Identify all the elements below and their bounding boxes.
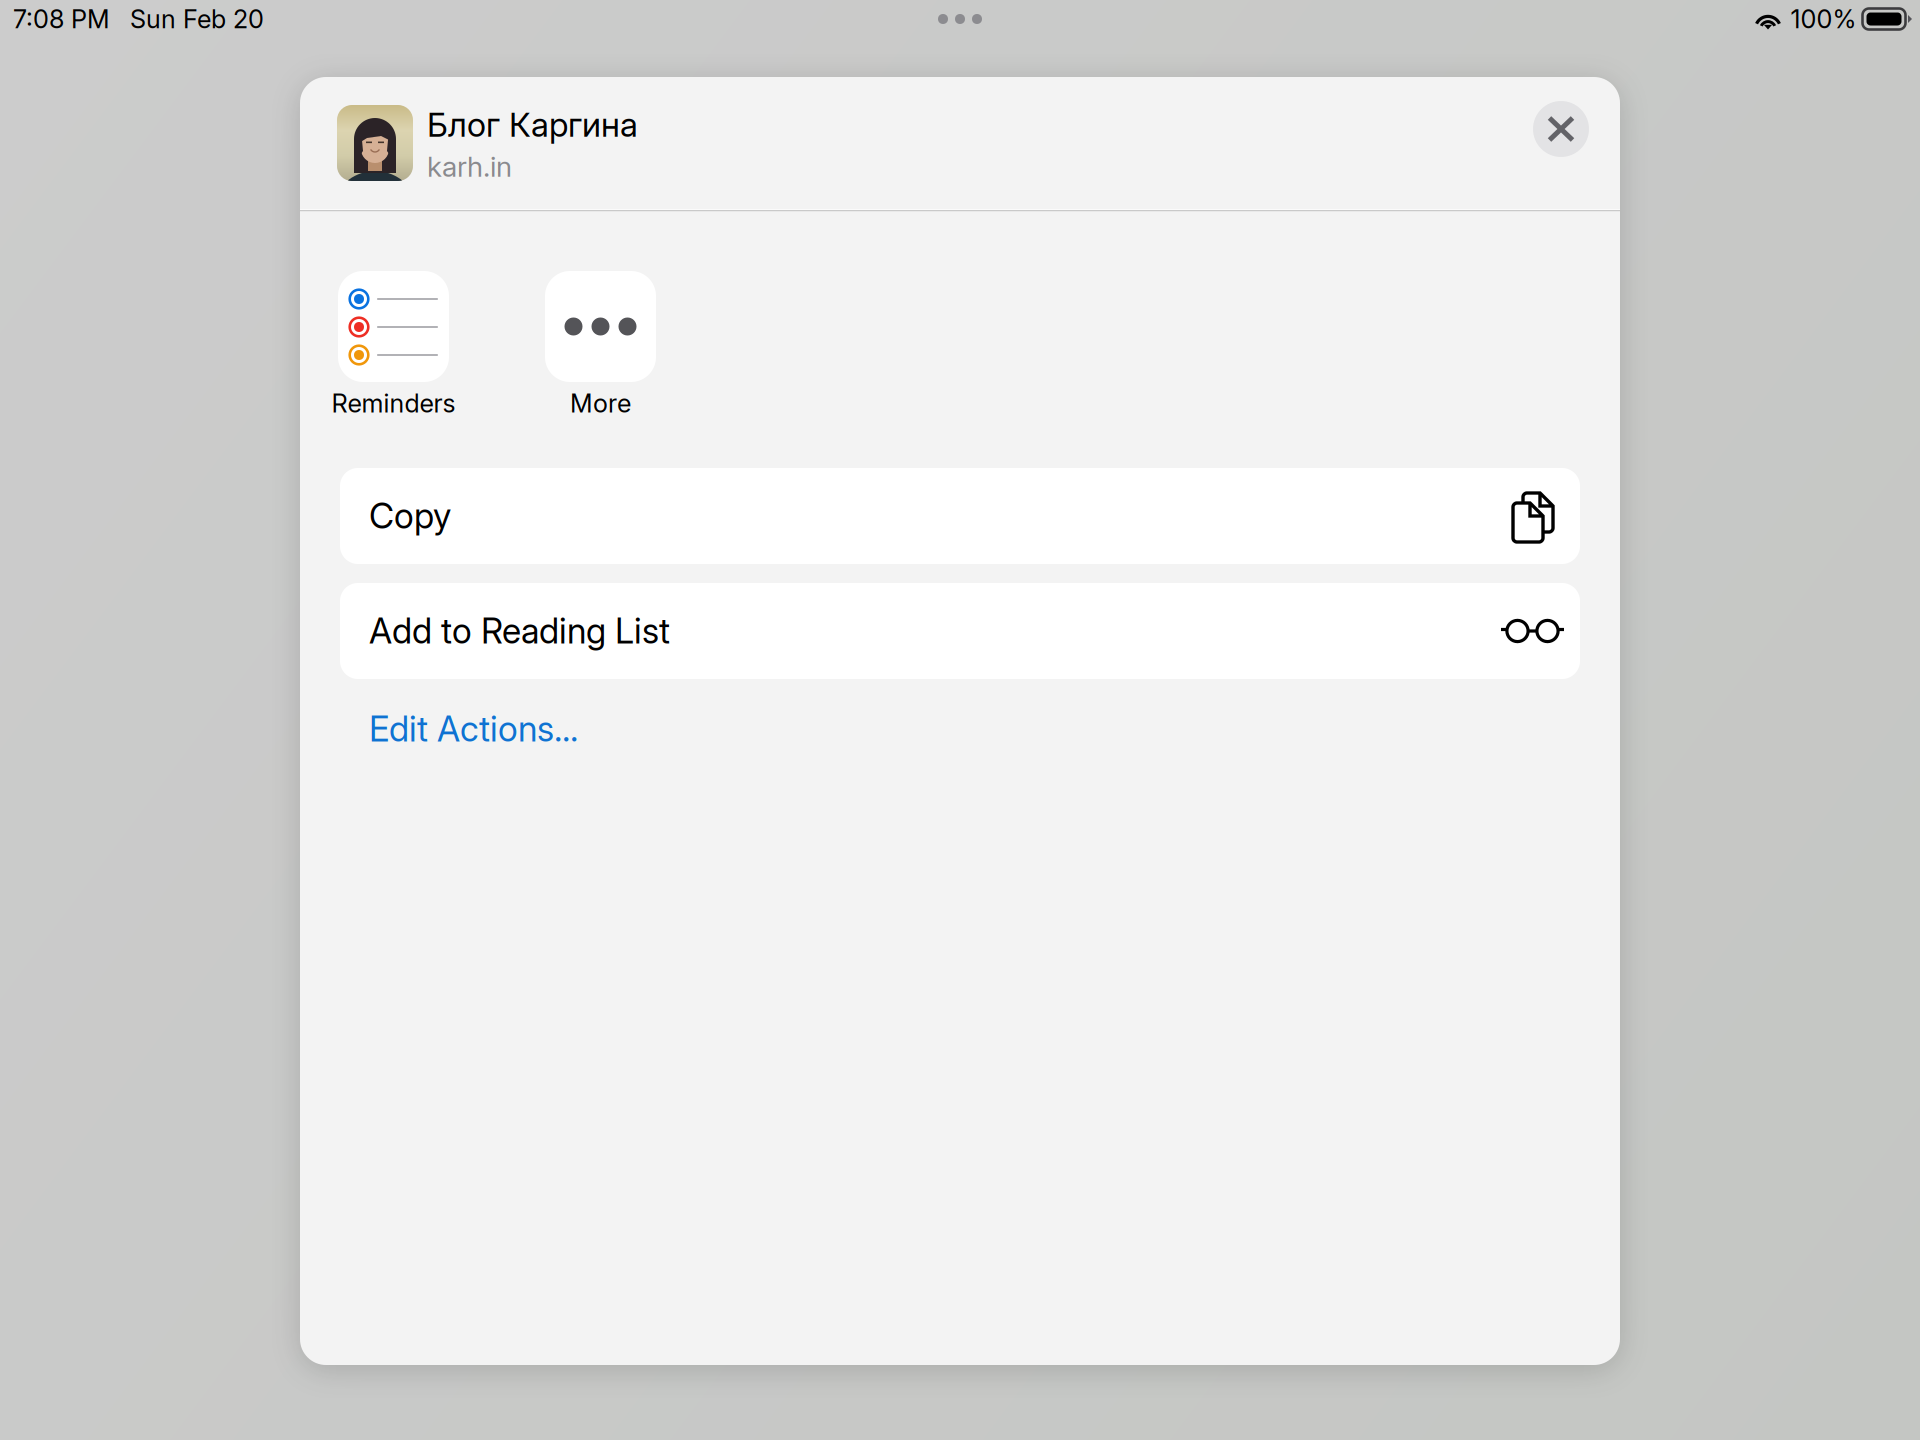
staticText: Add to Reading List [369,610,670,652]
staticText: Copy [369,495,451,537]
button[interactable]: Copy [340,468,1580,564]
button[interactable]: More [545,271,656,423]
staticText: Edit Actions... [369,708,578,750]
button[interactable]: Reminders [338,271,449,423]
staticText: Блог Каргина [427,104,638,145]
button[interactable]: Add to Reading List [340,583,1580,679]
staticText: 7:08 PM [13,4,110,34]
button[interactable]: Edit Actions... [340,703,1580,755]
button[interactable]: Close [1533,115,1589,171]
staticText: More [570,388,631,419]
staticText: Sun Feb 20 [130,4,264,34]
staticText: 100% [1790,4,1856,34]
staticText: Reminders [331,388,455,419]
staticText: karh.in [427,150,512,184]
